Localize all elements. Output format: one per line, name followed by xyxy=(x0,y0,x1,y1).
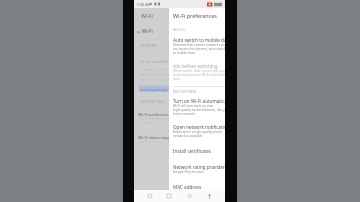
staticText: Install certificates xyxy=(173,148,211,154)
button[interactable]: Wi-Fi preferences xyxy=(169,0,225,202)
staticText: Wi-Fi On xyxy=(173,28,186,32)
staticText: Google Play services xyxy=(173,170,204,174)
staticText: Ask before switching xyxy=(173,63,218,69)
staticText: high-quality saved networks, like your xyxy=(173,108,225,112)
staticText: 5:08 AM xyxy=(137,2,151,7)
staticText: 0.00 B used Sep 1 – 30 xyxy=(138,140,172,144)
button[interactable]: scanning settings xyxy=(139,86,175,92)
staticText: NETWORKS xyxy=(140,44,158,48)
staticText: networks, turn on xyxy=(140,67,168,71)
staticText: Open network notification xyxy=(173,124,225,130)
staticText: SAVED SETTINGS xyxy=(140,100,166,104)
button[interactable]: Wi-Fi preferences xyxy=(138,111,225,125)
staticText: Wi-Fi data usage xyxy=(138,134,172,140)
staticText: Wi-Fi will turn back on near xyxy=(173,104,214,108)
staticText: WI-FI SETTINGS xyxy=(173,90,197,94)
staticText: use data xyxy=(138,121,151,125)
staticText: Network rating provider xyxy=(173,164,225,170)
button[interactable]: Open network notification xyxy=(169,124,225,138)
button[interactable]: MAC address xyxy=(169,184,225,190)
staticText: When mobile data is used, ask you before xyxy=(173,69,225,73)
staticText: to mobile data xyxy=(173,51,195,55)
staticText: Notify when a high-quality public xyxy=(173,130,223,134)
staticText: Detected that current network could xyxy=(173,43,225,47)
button[interactable]: Network rating provider xyxy=(169,164,225,174)
staticText: home network xyxy=(173,112,195,116)
button[interactable]: Home xyxy=(159,190,179,202)
button[interactable]: Auto switch to mobile data xyxy=(169,37,225,55)
button[interactable]: Wi-Fi data usage xyxy=(138,134,225,144)
button[interactable]: Expand xyxy=(199,190,219,202)
staticText: data xyxy=(173,77,180,81)
button[interactable]: Wi-Fi xyxy=(136,28,225,34)
staticText: switching between Wi-Fi and mobile xyxy=(173,73,225,77)
staticText: nearby networks. xyxy=(140,82,167,86)
button[interactable]: Back xyxy=(179,190,199,202)
staticText: services can scan for xyxy=(140,77,172,81)
staticText: Wi-Fi xyxy=(141,12,153,19)
button[interactable]: Install certificates xyxy=(169,148,225,154)
staticText: scanning settings xyxy=(140,87,168,91)
staticText: Wi-Fi xyxy=(142,28,153,34)
button[interactable]: Ask before switching xyxy=(169,63,225,81)
staticText: not access the internet, auto switch xyxy=(173,47,225,51)
staticText: Wi-Fi preferences xyxy=(173,12,217,19)
staticText: Wi-Fi preferences xyxy=(138,111,173,117)
staticText: network is available xyxy=(173,134,203,138)
staticText: Wi-Fi for public networks xyxy=(138,117,176,121)
staticText: Wi-Fi. Some apps and xyxy=(140,72,174,76)
staticText: Auto switch to mobile data xyxy=(173,37,225,43)
staticText: Turn on Wi-Fi automatically xyxy=(173,98,225,104)
staticText: To see available xyxy=(140,59,168,64)
button[interactable]: Turn on Wi-Fi automatically xyxy=(169,98,225,116)
button[interactable]: Recent apps xyxy=(140,190,159,202)
staticText: MAC address xyxy=(173,184,202,190)
